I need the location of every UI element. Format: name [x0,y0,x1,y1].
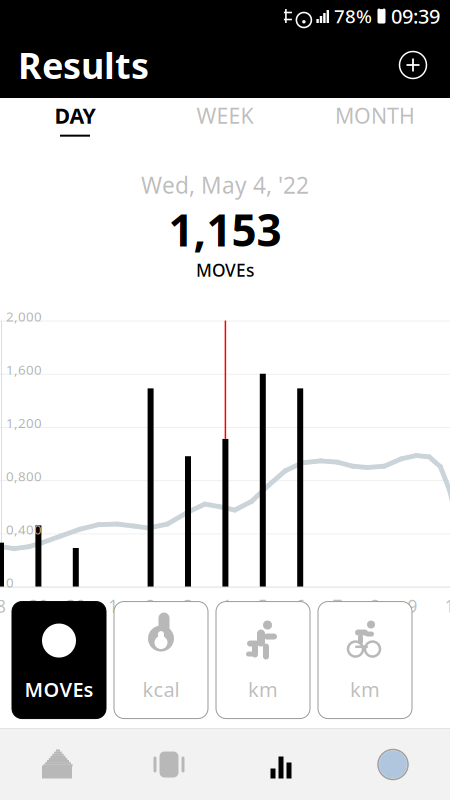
button[interactable]: km [318,601,412,718]
staticText: 1,600 [6,361,42,378]
staticText: 8 [0,594,6,617]
staticText: km [248,676,278,703]
staticText: 1,153 [168,200,281,258]
staticText: 30 [66,594,86,617]
staticText: 0,800 [6,467,42,485]
staticText: 2 [146,594,156,617]
staticText: MONTH [335,101,415,130]
staticText: kcal [142,676,179,703]
staticText: 09:39 [391,3,440,29]
staticText: WEEK [196,101,253,130]
staticText: 1,200 [6,414,42,432]
staticText: 7 [333,594,343,617]
staticText: MOVEs [24,676,93,703]
button[interactable]: Results [225,729,337,800]
staticText: Wed, May 4, '22 [141,170,309,200]
staticText: Results [18,41,149,89]
staticText: DAY [54,101,95,130]
button[interactable]: Devices [113,729,225,800]
staticText: 29 [28,594,48,617]
button[interactable]: WEEK [150,98,300,140]
staticText: 78% [334,4,372,28]
staticText: 9 [407,594,417,617]
staticText: km [350,676,380,703]
button[interactable]: MOVEs [12,601,106,718]
staticText: 5 [258,594,268,617]
staticText: 4 [220,594,230,617]
staticText: MOVEs [196,258,254,281]
button[interactable]: kcal [114,601,208,718]
staticText: 1 [108,594,118,617]
staticText: 0 [6,573,14,591]
button[interactable]: DAY [0,98,150,140]
staticText: 6 [295,594,305,617]
staticText: 3 [183,594,193,617]
button[interactable]: Home [1,729,113,800]
button[interactable]: MONTH [300,98,450,140]
staticText: 2,000 [6,307,42,325]
button[interactable]: Profile [337,729,449,800]
button[interactable]: km [216,601,310,718]
staticText: 0,400 [6,520,42,538]
staticText: 1 [445,594,450,617]
button[interactable]: Add [390,42,436,88]
staticText: 8 [370,594,380,617]
